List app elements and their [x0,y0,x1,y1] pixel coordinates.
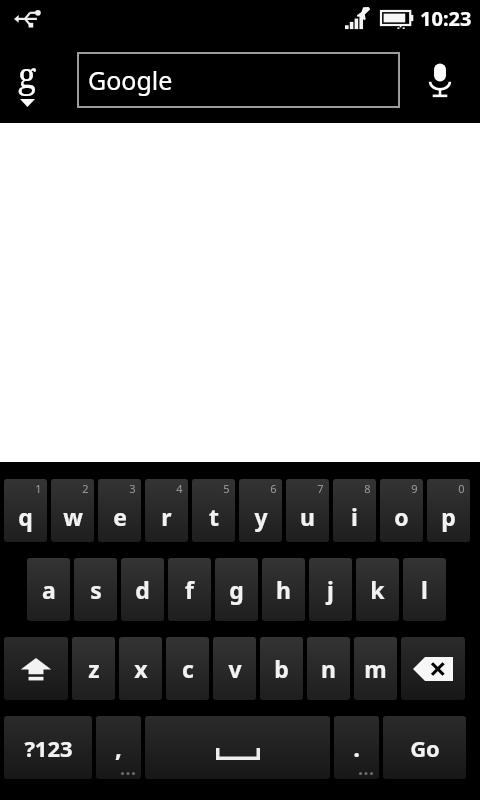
button[interactable]: k [356,558,399,621]
button[interactable]: Space [145,716,330,779]
staticText: . [353,731,360,764]
button[interactable]: Backspace [401,637,465,700]
staticText: l [421,574,428,605]
button[interactable]: c [166,637,209,700]
button[interactable]: . [334,716,379,779]
staticText: e [113,501,127,532]
staticText: h [276,574,291,605]
button[interactable]: ?123 [4,716,92,779]
button[interactable]: 1 [4,479,47,542]
staticText: t [209,501,219,532]
button[interactable]: z [72,637,115,700]
staticText: i [351,501,358,532]
staticText: a [42,574,56,605]
staticText: j [327,574,334,605]
staticText: g [229,574,244,605]
button[interactable]: 2 [51,479,94,542]
button[interactable]: 9 [380,479,423,542]
button[interactable]: , [96,716,141,779]
button[interactable]: Go [383,716,466,779]
button[interactable]: h [262,558,305,621]
button[interactable]: Search provider [18,52,37,107]
staticText: u [300,501,315,532]
button[interactable]: 6 [239,479,282,542]
button[interactable]: Google [77,52,400,108]
button[interactable]: j [309,558,352,621]
button[interactable]: Voice search [416,56,464,104]
staticText: 4 [176,481,183,496]
button[interactable]: m [354,637,397,700]
staticText: 10:23 [420,5,472,32]
staticText: 2 [82,481,89,496]
staticText: 8 [364,481,371,496]
button[interactable]: 5 [192,479,235,542]
staticText: 0 [458,481,465,496]
staticText: Go [410,733,440,763]
button[interactable]: 0 [427,479,470,542]
staticText: 9 [411,481,418,496]
button[interactable]: v [213,637,256,700]
staticText: n [321,653,336,684]
staticText: 7 [317,481,324,496]
staticText: o [394,501,409,532]
button[interactable]: g [215,558,258,621]
button[interactable]: l [403,558,446,621]
staticText: x [134,653,148,684]
staticText: c [182,653,194,684]
staticText: v [228,653,242,684]
button[interactable]: 4 [145,479,188,542]
staticText: Google [88,63,173,97]
staticText: y [254,501,268,532]
staticText: , [115,731,122,764]
staticText: d [135,574,150,605]
button[interactable]: d [121,558,164,621]
staticText: 5 [223,481,230,496]
staticText: b [274,653,289,684]
staticText: 3 [129,481,136,496]
staticText: f [185,574,194,605]
button[interactable]: x [119,637,162,700]
button[interactable]: f [168,558,211,621]
staticText: k [370,574,385,605]
staticText: g [18,52,37,98]
staticText: q [18,501,33,532]
staticText: p [441,501,456,532]
staticText: w [63,501,83,532]
staticText: r [161,501,172,532]
button[interactable]: 3 [98,479,141,542]
staticText: z [88,653,100,684]
button[interactable]: 8 [333,479,376,542]
staticText: 6 [270,481,277,496]
button[interactable]: b [260,637,303,700]
button[interactable]: s [74,558,117,621]
button[interactable]: n [307,637,350,700]
staticText: ?123 [24,733,73,763]
staticText: 1 [35,481,42,496]
staticText: m [364,653,387,684]
button[interactable]: 7 [286,479,329,542]
button[interactable]: a [27,558,70,621]
button[interactable]: Shift [4,637,68,700]
staticText: s [90,574,102,605]
